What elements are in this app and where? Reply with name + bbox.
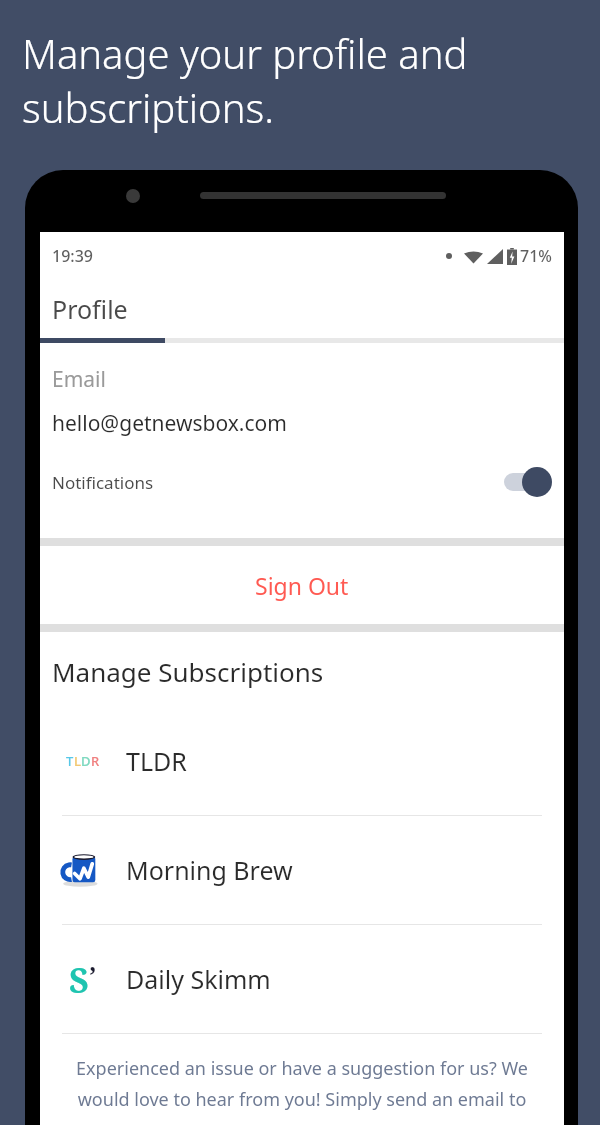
button[interactable]: T	[40, 707, 564, 815]
staticText: hello@getnewsbox.com	[52, 409, 287, 438]
staticText: L	[74, 752, 81, 770]
staticText: Morning Brew	[126, 853, 293, 887]
button[interactable]: Notifications	[52, 460, 552, 504]
staticText: Manage your profile and	[22, 26, 468, 80]
staticText: Profile	[52, 292, 128, 326]
staticText: ’	[89, 957, 97, 992]
staticText: subscriptions.	[22, 80, 274, 134]
staticText: T	[66, 752, 74, 770]
button[interactable]: Sign Out	[40, 546, 564, 624]
button[interactable]: Morning Brew	[40, 816, 564, 924]
staticText: Daily Skimm	[126, 962, 271, 996]
button[interactable]: S	[40, 925, 564, 1033]
staticText: D	[81, 752, 91, 770]
staticText: Email	[52, 365, 106, 394]
staticText: S	[69, 957, 89, 1001]
staticText: Manage Subscriptions	[52, 654, 324, 689]
staticText: Notifications	[52, 471, 154, 494]
staticText: 19:39	[52, 245, 93, 267]
staticText: R	[91, 752, 100, 770]
staticText: 71%	[520, 245, 552, 267]
staticText: Sign Out	[255, 570, 349, 601]
staticText: TLDR	[126, 744, 187, 778]
button[interactable]: Profile	[40, 280, 564, 343]
staticText: Experienced an issue or have a suggestio…	[68, 1056, 536, 1111]
